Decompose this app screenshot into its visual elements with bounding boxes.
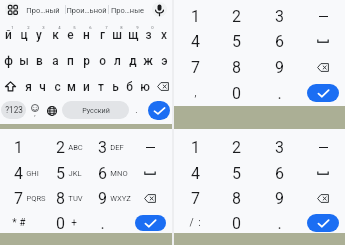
button[interactable]: 8 [38,186,82,210]
button[interactable]: Enter [304,81,342,105]
button[interactable]: Emoji [27,101,42,120]
button[interactable]: 5 [38,161,82,185]
button[interactable]: э [156,48,172,73]
button[interactable]: 0 [140,21,156,46]
button[interactable]: р [78,48,94,73]
button[interactable]: Backspace [306,186,340,210]
button[interactable]: 9 [125,21,141,46]
button[interactable]: Enter [146,100,172,121]
button[interactable]: 7 [173,55,217,79]
button[interactable]: Change language [44,101,59,120]
button[interactable]: Enter [304,211,342,235]
button[interactable]: 5 [62,21,78,46]
staticText: Про…ный [26,6,60,15]
button[interactable]: 1 [0,21,16,46]
button[interactable]: Backspace [152,74,173,99]
button[interactable]: Про…ный [23,1,63,19]
button[interactable]: и [79,74,94,99]
button[interactable]: ю [137,74,152,99]
button[interactable]: Dash [306,135,340,159]
button[interactable]: 1 [173,135,217,159]
staticText: 4 [58,25,61,30]
button[interactable]: Dash [133,135,167,159]
button[interactable]: 6 [257,161,301,185]
button[interactable]: д [125,48,141,73]
button[interactable]: Space [133,161,167,185]
button[interactable]: 7 [0,186,40,210]
button[interactable]: Про…ные [107,1,147,19]
button[interactable]: п [62,48,78,73]
button[interactable]: 6 [257,29,301,53]
button[interactable]: 2 [16,21,32,46]
button[interactable]: ч [35,74,50,99]
button[interactable]: 9 [80,186,124,210]
button[interactable]: Shift [0,74,21,99]
button[interactable]: 4 [47,21,63,46]
button[interactable]: 9 [257,186,301,210]
button[interactable]: в [31,48,47,73]
button[interactable]: 0 [214,211,258,235]
button[interactable]: ?123 [1,101,26,119]
button[interactable]: Русский [62,101,129,119]
button[interactable]: 3 [257,4,301,28]
button[interactable]: 3 [31,21,47,46]
button[interactable]: 1 [173,4,217,28]
staticText: я [25,80,32,94]
button[interactable]: , [177,81,213,105]
button[interactable]: Space [306,29,340,53]
button[interactable]: 4 [173,29,217,53]
button[interactable]: Backspace [306,55,340,79]
button[interactable]: * [0,211,36,235]
button[interactable]: ы [16,48,32,73]
button[interactable]: ф [0,48,16,73]
button[interactable]: . [130,101,143,120]
button[interactable]: Dash [306,4,340,28]
button[interactable]: Toolbar [4,1,20,17]
button[interactable]: ж [140,48,156,73]
button[interactable]: . [257,81,301,105]
button[interactable]: 0 [214,81,258,105]
button[interactable]: 2 [38,135,82,159]
button[interactable]: 4 [173,161,217,185]
staticText: WXYZ [110,194,131,203]
button[interactable]: б [122,74,137,99]
button[interactable]: а [47,48,63,73]
button[interactable]: Backspace [133,186,167,210]
button[interactable]: т [93,74,108,99]
button[interactable]: о [94,48,110,73]
button[interactable]: 7 [94,21,110,46]
button[interactable]: 8 [109,21,125,46]
button[interactable]: 3 [257,135,301,159]
button[interactable]: Прои…ьной [65,1,107,19]
button[interactable]: Enter [132,212,169,234]
button[interactable]: 3 [80,135,124,159]
button[interactable]: 6 [80,161,124,185]
staticText: 7 [14,189,23,208]
button[interactable]: 2 [214,135,258,159]
button[interactable]: с [50,74,65,99]
staticText: 8 [232,58,241,77]
staticText: 5 [232,32,241,51]
button[interactable]: м [64,74,79,99]
button[interactable]: 8 [214,186,258,210]
button[interactable]: . [257,211,301,235]
button[interactable]: 1 [0,135,40,159]
button[interactable]: / [177,211,213,235]
button[interactable]: Voice input [151,1,167,17]
staticText: 0 [232,214,241,233]
button[interactable]: . [80,211,124,235]
button[interactable]: ь [108,74,123,99]
button[interactable]: 8 [214,55,258,79]
button[interactable]: 4 [0,161,40,185]
button[interactable]: Space [306,161,340,185]
button[interactable]: л [109,48,125,73]
button[interactable]: 9 [257,55,301,79]
button[interactable]: 2 [214,4,258,28]
button[interactable]: 5 [214,29,258,53]
button[interactable]: 5 [214,161,258,185]
button[interactable]: х [156,21,172,46]
button[interactable]: 6 [78,21,94,46]
button[interactable]: я [21,74,36,99]
button[interactable]: 0 [42,211,78,235]
button[interactable]: 7 [173,186,217,210]
